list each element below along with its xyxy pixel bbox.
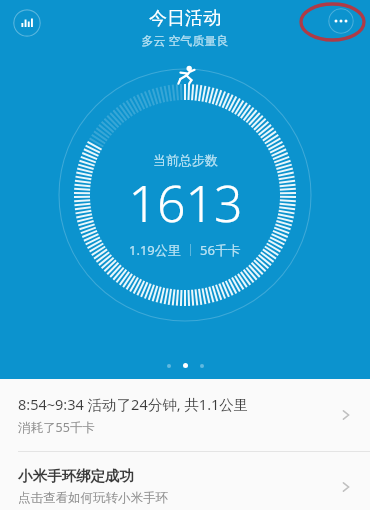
staticText: 1613 <box>128 169 243 237</box>
staticText: 今日活动 <box>149 7 221 30</box>
staticText: 消耗了55千卡 <box>18 419 95 436</box>
staticText: 多云 空气质量良 <box>141 32 229 48</box>
button[interactable]: More options <box>328 8 354 34</box>
staticText: 小米手环绑定成功 <box>18 467 134 485</box>
button[interactable]: 小米手环绑定成功 <box>0 452 370 510</box>
staticText: 1.19公里 <box>129 241 181 259</box>
staticText: 56千卡 <box>200 241 241 259</box>
staticText: 当前总步数 <box>153 152 218 168</box>
button[interactable]: 8:54~9:34 活动了24分钟, 共1.1公里 <box>0 379 370 451</box>
button[interactable]: Statistics <box>13 9 41 37</box>
staticText: 8:54~9:34 活动了24分钟, 共1.1公里 <box>18 394 249 414</box>
staticText: 点击查看如何玩转小米手环 <box>18 490 168 506</box>
